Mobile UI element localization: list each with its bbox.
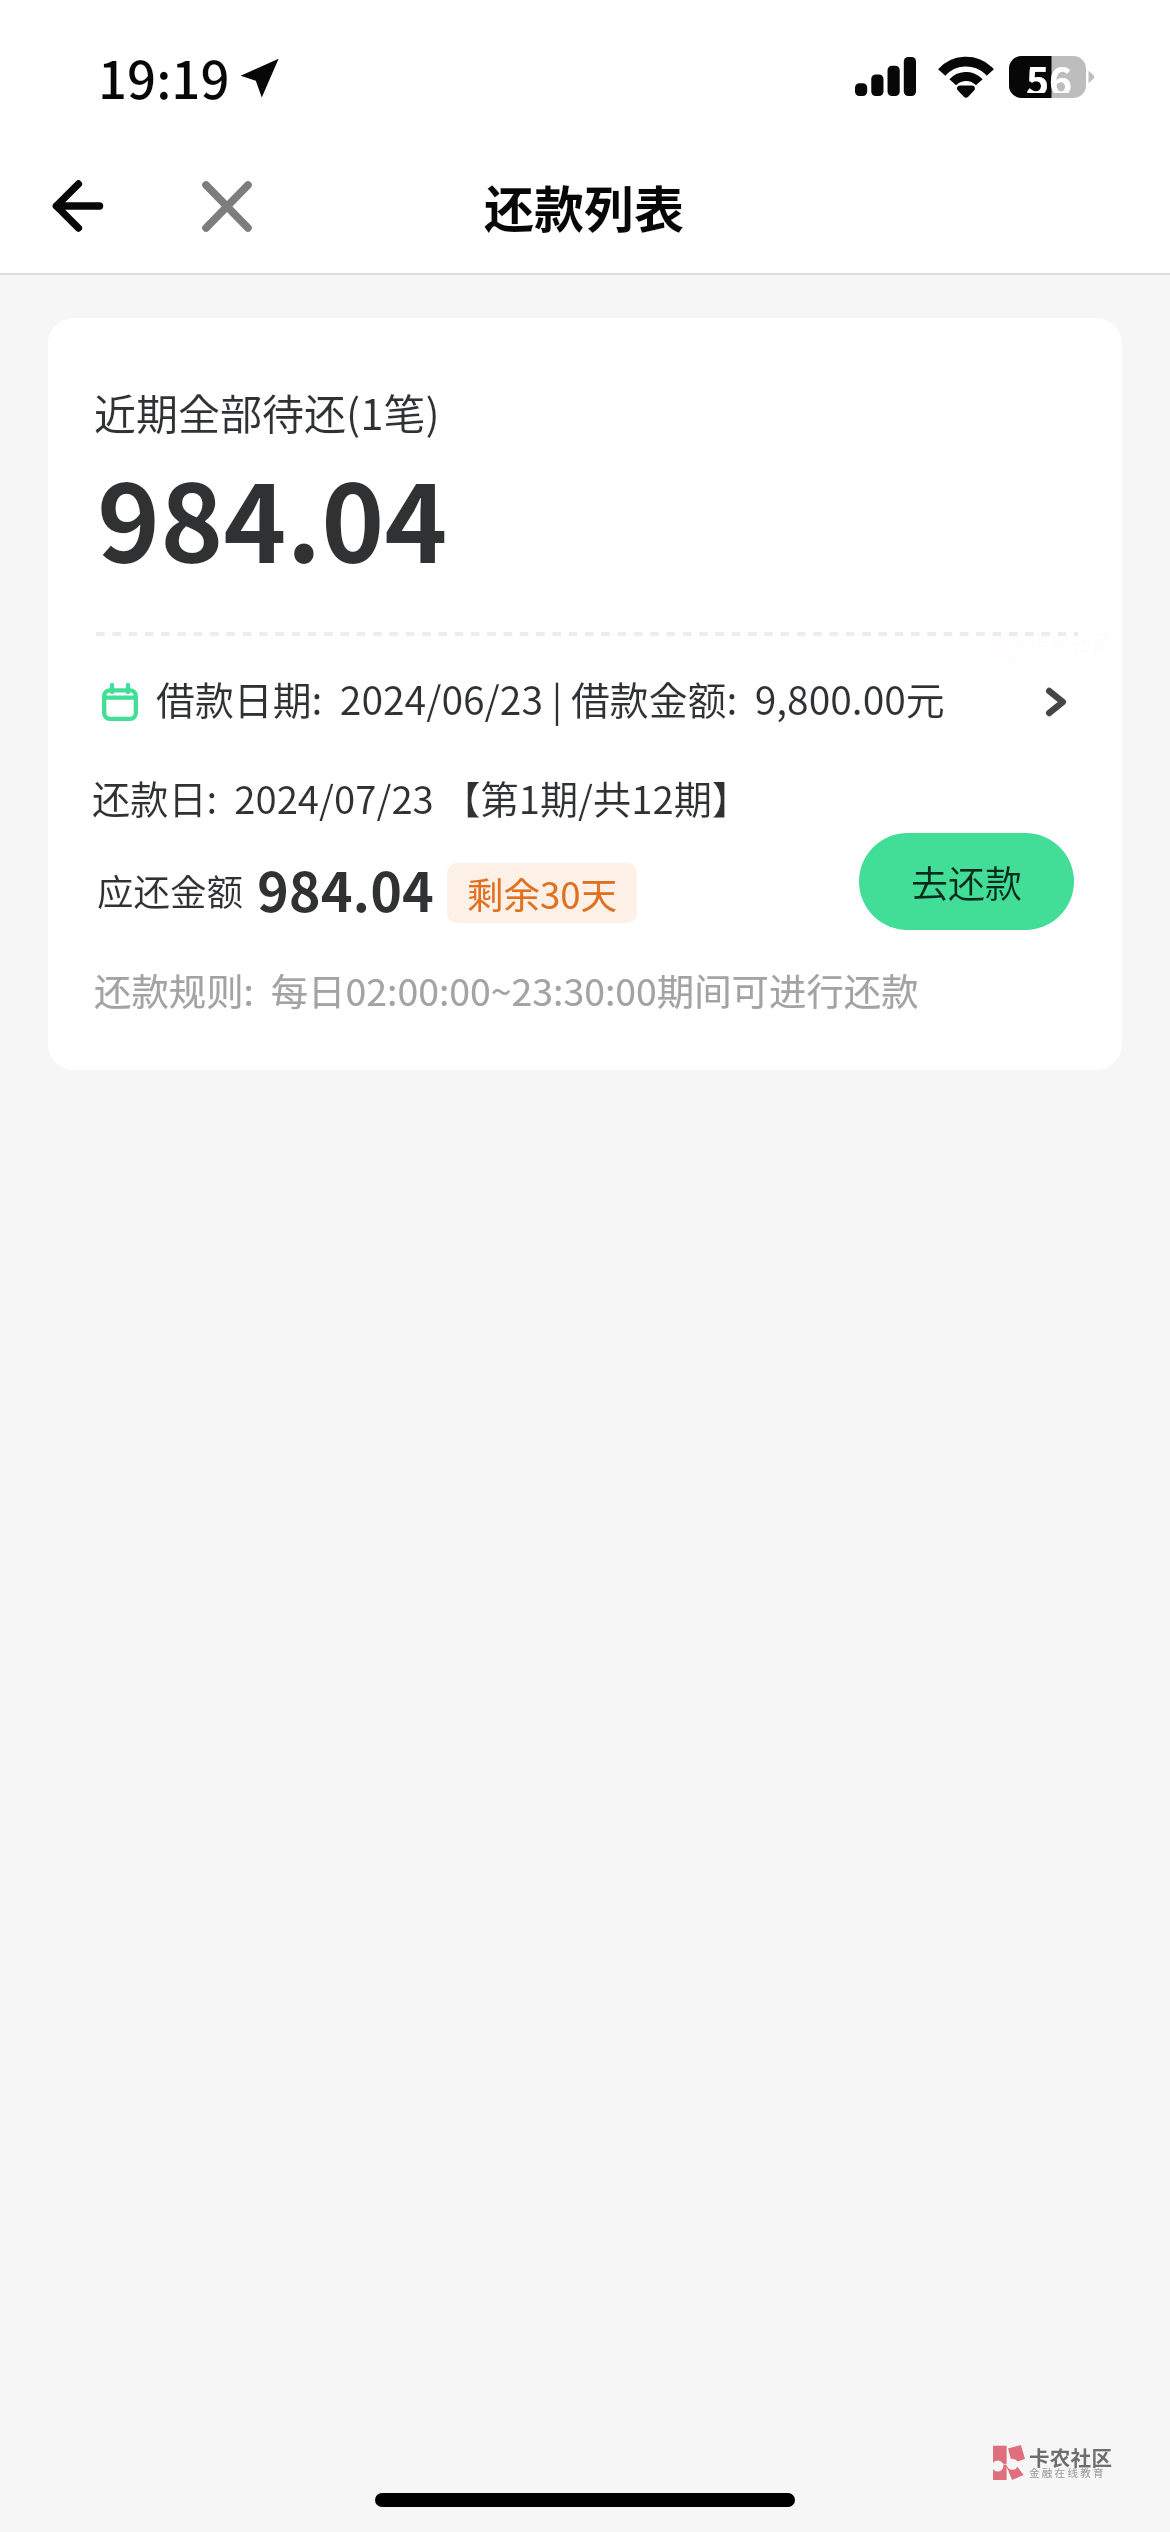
staticText: 借款日期: 2024/06/23 | 借款金额: 9,800.00元 (156, 670, 945, 726)
staticText: 还款日: 2024/07/23 【第1期/共12期】 (92, 770, 751, 825)
button[interactable]: 去还款 (859, 833, 1074, 930)
staticText: 剩余30天 (467, 867, 618, 920)
staticText: 还款列表 (484, 170, 684, 242)
staticText: 金融在线教育 (1029, 2465, 1106, 2480)
staticText: 去还款 (911, 855, 1022, 909)
button[interactable]: Back (11, 140, 143, 272)
staticText: 984.04 (97, 439, 448, 594)
staticText: 卡农社区 (1029, 2442, 1113, 2472)
button[interactable]: 借款日期: 2024/06/23 | 借款金额: 9,800.00元 (48, 665, 1122, 741)
staticText: 应还金额 (97, 864, 243, 917)
staticText: 56 (1026, 51, 1073, 93)
staticText: 19:19 (98, 40, 230, 114)
staticText: 卡农社区 (1029, 627, 1113, 657)
staticText: 还款规则: 每日02:00:00~23:30:00期间可进行还款 (94, 963, 919, 1017)
staticText: 近期全部待还(1笔) (94, 381, 440, 442)
staticText: 984.04 (257, 849, 434, 927)
button[interactable]: Close (161, 140, 293, 272)
